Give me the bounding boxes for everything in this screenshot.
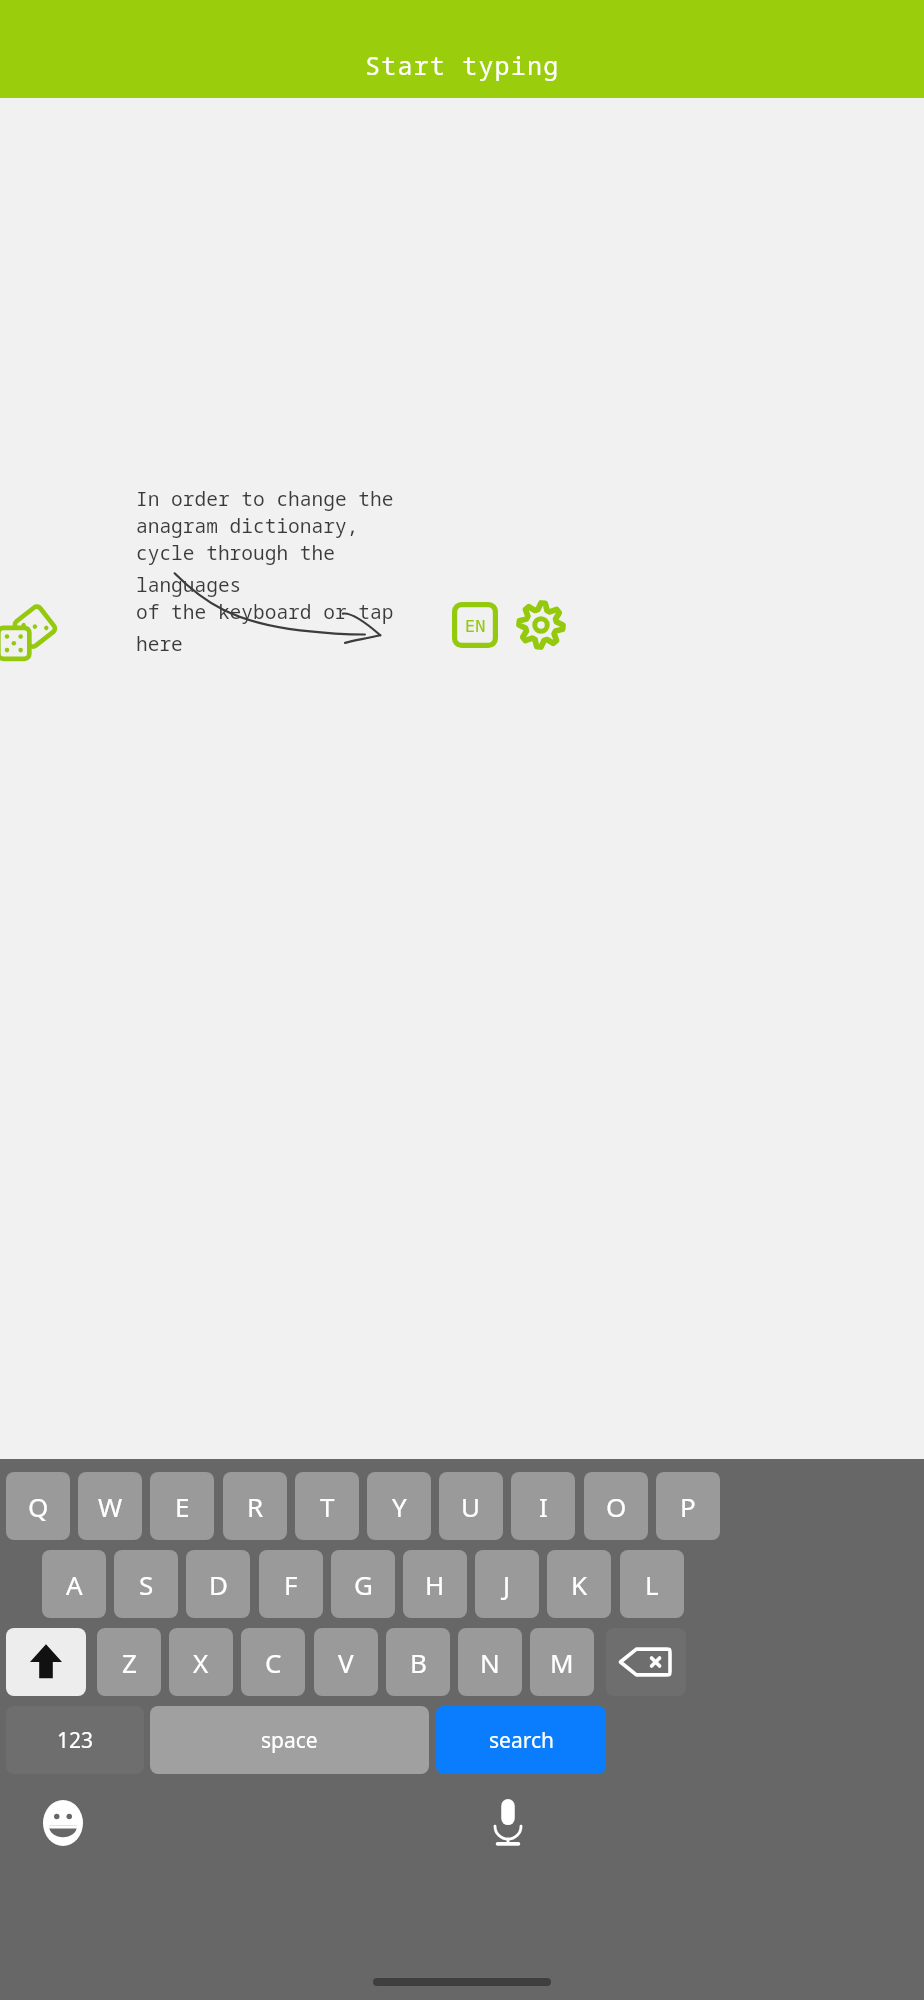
- staticText: V: [338, 1645, 354, 1680]
- staticText: Y: [392, 1489, 407, 1524]
- button[interactable]: K: [547, 1550, 611, 1618]
- button[interactable]: E: [150, 1472, 214, 1540]
- button[interactable]: O: [584, 1472, 648, 1540]
- button[interactable]: M: [530, 1628, 594, 1696]
- button[interactable]: C: [241, 1628, 305, 1696]
- staticText: L: [645, 1567, 659, 1602]
- button[interactable]: L: [620, 1550, 684, 1618]
- staticText: F: [284, 1567, 298, 1602]
- staticText: Z: [122, 1645, 137, 1680]
- button[interactable]: R: [223, 1472, 287, 1540]
- button[interactable]: U: [439, 1472, 503, 1540]
- button[interactable]: Voice input: [482, 1796, 534, 1848]
- staticText: P: [680, 1489, 696, 1524]
- button[interactable]: Shuffle letters: [0, 603, 56, 665]
- button[interactable]: search: [436, 1706, 606, 1774]
- button[interactable]: Emoji: [38, 1798, 88, 1848]
- staticText: N: [480, 1645, 500, 1680]
- button[interactable]: P: [656, 1472, 720, 1540]
- button[interactable]: Shift: [6, 1628, 86, 1696]
- staticText: C: [265, 1645, 282, 1680]
- staticText: T: [320, 1489, 335, 1524]
- button[interactable]: B: [386, 1628, 450, 1696]
- button[interactable]: J: [475, 1550, 539, 1618]
- button[interactable]: I: [511, 1472, 575, 1540]
- staticText: space: [261, 1726, 318, 1755]
- button[interactable]: X: [169, 1628, 233, 1696]
- button[interactable]: D: [186, 1550, 250, 1618]
- staticText: of the keyboard or tap here: [136, 598, 436, 657]
- button[interactable]: space: [150, 1706, 429, 1774]
- staticText: search: [489, 1726, 554, 1755]
- staticText: In order to change the: [136, 485, 394, 512]
- button[interactable]: 123: [6, 1706, 144, 1774]
- button[interactable]: Y: [367, 1472, 431, 1540]
- staticText: Q: [28, 1489, 49, 1524]
- button[interactable]: V: [314, 1628, 378, 1696]
- button[interactable]: Z: [97, 1628, 161, 1696]
- staticText: X: [193, 1645, 209, 1680]
- staticText: E: [175, 1489, 190, 1524]
- staticText: S: [139, 1567, 154, 1602]
- staticText: O: [606, 1489, 627, 1524]
- staticText: U: [461, 1489, 481, 1524]
- button[interactable]: A: [42, 1550, 106, 1618]
- button[interactable]: G: [331, 1550, 395, 1618]
- staticText: H: [425, 1567, 445, 1602]
- staticText: cycle through the languages: [136, 539, 436, 598]
- staticText: M: [550, 1645, 574, 1680]
- staticText: EN: [465, 614, 486, 637]
- staticText: A: [66, 1567, 83, 1602]
- staticText: B: [410, 1645, 427, 1680]
- staticText: W: [98, 1489, 123, 1524]
- button[interactable]: W: [78, 1472, 142, 1540]
- staticText: K: [571, 1567, 588, 1602]
- staticText: R: [247, 1489, 264, 1524]
- button[interactable]: N: [458, 1628, 522, 1696]
- staticText: 123: [57, 1726, 94, 1755]
- button[interactable]: EN: [452, 602, 498, 648]
- button[interactable]: T: [295, 1472, 359, 1540]
- staticText: anagram dictionary,: [136, 512, 359, 539]
- button[interactable]: Backspace: [606, 1628, 686, 1696]
- button[interactable]: H: [403, 1550, 467, 1618]
- button[interactable]: Q: [6, 1472, 70, 1540]
- staticText: I: [539, 1489, 548, 1524]
- button[interactable]: Settings: [516, 600, 566, 650]
- button[interactable]: F: [259, 1550, 323, 1618]
- staticText: J: [503, 1567, 511, 1602]
- staticText: G: [354, 1567, 373, 1602]
- staticText: Start typing: [365, 48, 560, 82]
- button[interactable]: S: [114, 1550, 178, 1618]
- staticText: D: [209, 1567, 228, 1602]
